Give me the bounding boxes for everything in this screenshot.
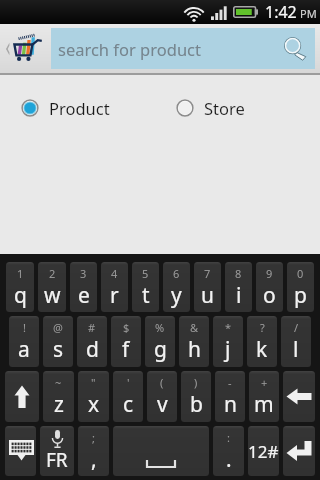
staticText: i: [236, 281, 242, 310]
button[interactable]: ?: [247, 316, 277, 367]
staticText: 12#: [248, 440, 279, 463]
staticText: %: [155, 320, 165, 335]
button[interactable]: *: [213, 316, 243, 367]
staticText: ): [194, 375, 198, 390]
button[interactable]: #: [77, 316, 107, 367]
staticText: h: [188, 335, 201, 364]
button[interactable]: 0: [287, 262, 314, 312]
button[interactable]: ~: [43, 371, 74, 422]
staticText: 1:42: [265, 1, 297, 23]
button[interactable]: Search: [275, 28, 315, 69]
button[interactable]: Voice input: [40, 426, 74, 476]
staticText: k: [256, 335, 268, 364]
staticText: 9: [266, 266, 273, 281]
staticText: search for product: [58, 38, 275, 60]
button[interactable]: 7: [194, 262, 221, 312]
button[interactable]: Store: [170, 90, 251, 126]
button[interactable]: :: [213, 426, 244, 476]
button[interactable]: Space: [113, 426, 209, 476]
button[interactable]: $: [111, 316, 141, 367]
button[interactable]: Shift: [5, 371, 39, 422]
button[interactable]: Navigate up: [0, 24, 51, 73]
staticText: 6: [173, 266, 180, 281]
button[interactable]: 12#: [248, 426, 279, 476]
staticText: a: [18, 335, 30, 364]
button[interactable]: ': [113, 371, 143, 422]
staticText: ": [91, 375, 96, 390]
staticText: ,: [91, 445, 97, 474]
staticText: v: [157, 390, 168, 419]
staticText: u: [201, 281, 214, 310]
button[interactable]: ": [78, 371, 109, 422]
staticText: r: [110, 281, 119, 310]
button[interactable]: Product: [15, 90, 116, 126]
staticText: 0: [297, 266, 304, 281]
staticText: ?: [260, 320, 265, 335]
staticText: n: [224, 390, 237, 419]
staticText: c: [123, 390, 134, 419]
staticText: &: [190, 320, 199, 335]
button[interactable]: 9: [256, 262, 283, 312]
button[interactable]: Hide keyboard: [5, 426, 36, 476]
button[interactable]: /: [281, 316, 311, 367]
staticText: w: [44, 281, 61, 310]
staticText: l: [293, 335, 299, 364]
staticText: :: [227, 430, 230, 445]
staticText: f: [122, 335, 130, 364]
button[interactable]: Backspace: [283, 371, 315, 422]
button[interactable]: @: [43, 316, 73, 367]
button[interactable]: -: [215, 371, 245, 422]
button[interactable]: search for product: [51, 28, 315, 69]
staticText: -: [228, 375, 232, 390]
button[interactable]: 1: [6, 262, 34, 312]
staticText: FR: [46, 447, 68, 473]
staticText: g: [154, 335, 167, 364]
staticText: Store: [204, 97, 245, 119]
button[interactable]: 8: [225, 262, 252, 312]
staticText: ~: [55, 375, 62, 390]
button[interactable]: !: [9, 316, 39, 367]
staticText: 8: [235, 266, 242, 281]
staticText: 4: [111, 266, 118, 281]
staticText: $: [123, 320, 130, 335]
staticText: ;: [92, 430, 95, 445]
staticText: .: [226, 445, 232, 474]
staticText: Product: [49, 97, 110, 119]
button[interactable]: +: [249, 371, 279, 422]
button[interactable]: %: [145, 316, 175, 367]
staticText: *: [225, 320, 232, 335]
button[interactable]: 4: [101, 262, 128, 312]
staticText: x: [88, 390, 100, 419]
staticText: q: [14, 281, 27, 310]
staticText: /: [294, 320, 299, 335]
staticText: p: [294, 281, 307, 310]
button[interactable]: (: [147, 371, 177, 422]
button[interactable]: 5: [132, 262, 159, 312]
staticText: o: [263, 281, 276, 310]
staticText: @: [53, 320, 63, 335]
staticText: #: [88, 320, 96, 335]
staticText: y: [171, 281, 182, 310]
staticText: j: [225, 335, 231, 364]
staticText: e: [78, 281, 90, 310]
button[interactable]: 6: [163, 262, 190, 312]
staticText: d: [86, 335, 99, 364]
staticText: 1: [17, 266, 24, 281]
staticText: b: [190, 390, 203, 419]
staticText: 7: [204, 266, 211, 281]
staticText: t: [142, 281, 150, 310]
button[interactable]: &: [179, 316, 209, 367]
button[interactable]: Enter: [283, 426, 315, 476]
staticText: +: [261, 375, 268, 390]
staticText: 3: [80, 266, 87, 281]
staticText: m: [254, 390, 274, 419]
button[interactable]: 3: [70, 262, 97, 312]
button[interactable]: ): [181, 371, 211, 422]
staticText: !: [23, 320, 26, 335]
staticText: ': [127, 375, 130, 390]
staticText: 5: [142, 266, 149, 281]
staticText: (: [160, 375, 164, 390]
button[interactable]: 2: [38, 262, 66, 312]
button[interactable]: ;: [78, 426, 109, 476]
staticText: 2: [49, 266, 56, 281]
